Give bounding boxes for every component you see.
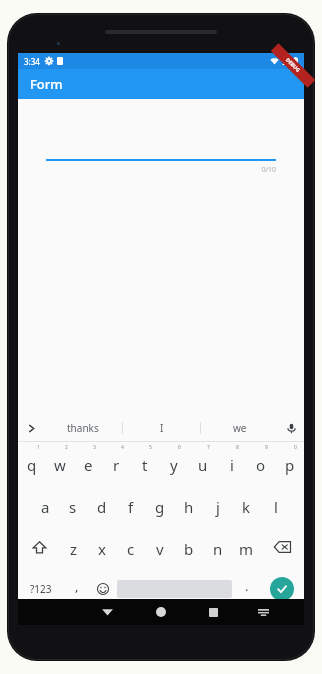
button[interactable]: g [145,484,174,526]
staticText: j [216,497,220,517]
staticText: h [184,497,194,517]
staticText: y [170,455,178,475]
button[interactable]: Done [270,577,294,601]
button[interactable]: h [174,484,203,526]
button[interactable]: z [60,526,88,568]
staticText: 0 [294,444,297,451]
button[interactable]: 5 [130,442,159,484]
button[interactable]: k [232,484,261,526]
staticText: 2 [65,444,68,451]
staticText: v [156,539,164,559]
button[interactable]: j [203,484,232,526]
staticText: 7 [207,444,210,451]
staticText: z [70,539,78,559]
button[interactable]: d [87,484,116,526]
staticText: l [274,497,278,517]
button[interactable]: v [145,526,174,568]
button[interactable]: Backspace [261,526,304,568]
staticText: 6 [178,444,181,451]
staticText: i [230,455,234,475]
button[interactable]: x [88,526,116,568]
staticText: s [69,497,77,517]
staticText: 1 [37,444,40,451]
button[interactable]: 0/10 [46,147,276,175]
staticText: . [245,577,249,595]
staticText: k [242,497,251,517]
staticText: 9 [265,444,268,451]
button[interactable]: I [123,415,200,441]
button[interactable]: thanks [44,415,122,441]
button[interactable]: 7 [188,442,217,484]
button[interactable]: 4 [102,442,130,484]
staticText: 5 [149,444,152,451]
button[interactable]: a [31,484,59,526]
button[interactable]: 1 [18,442,46,484]
staticText: 0/10 [46,165,276,175]
button[interactable]: l [261,484,290,526]
staticText: thanks [67,421,99,435]
staticText: 3 [93,444,96,451]
button[interactable]: b [174,526,203,568]
button[interactable]: Hide keyboard [81,599,134,625]
button[interactable]: 6 [159,442,188,484]
staticText: we [233,421,247,435]
button[interactable]: 8 [217,442,246,484]
button[interactable]: , [64,568,90,610]
staticText: f [128,497,134,517]
staticText: r [113,455,120,475]
button[interactable]: Emoji [90,568,115,610]
staticText: , [75,577,79,595]
staticText: a [41,497,50,517]
button[interactable]: we [201,415,278,441]
staticText: t [142,455,148,475]
staticText: p [285,455,295,475]
staticText: I [160,421,164,435]
staticText: w [54,455,66,475]
button[interactable]: c [116,526,145,568]
staticText: u [198,455,208,475]
button[interactable]: . [234,568,259,610]
staticText: DEBUG [284,57,302,74]
button[interactable]: 9 [246,442,275,484]
staticText: c [127,539,135,559]
button[interactable]: n [203,526,232,568]
button[interactable]: Voice input [278,415,304,441]
staticText: 4 [121,444,124,451]
button[interactable]: 2 [46,442,74,484]
button[interactable]: 3 [74,442,102,484]
staticText: b [184,539,194,559]
staticText: 8 [236,444,239,451]
button[interactable]: ?123 [18,568,64,610]
staticText: m [239,539,254,559]
button[interactable]: Switch keyboard [240,599,287,625]
staticText: n [213,539,223,559]
staticText: o [256,455,266,475]
button[interactable]: Recent apps [187,599,240,625]
button[interactable]: Home [134,599,187,625]
staticText: 3:34 [24,56,40,67]
button[interactable]: f [116,484,145,526]
staticText: e [84,455,93,475]
staticText: x [98,539,106,559]
staticText: g [155,497,165,517]
button[interactable]: m [232,526,261,568]
staticText: ?123 [30,582,52,596]
button[interactable]: More suggestions [18,415,44,441]
staticText: d [97,497,107,517]
button[interactable]: Shift [18,526,60,568]
staticText: q [27,455,37,475]
button[interactable]: s [59,484,87,526]
button[interactable]: 0 [275,442,304,484]
staticText: Form [30,75,63,93]
